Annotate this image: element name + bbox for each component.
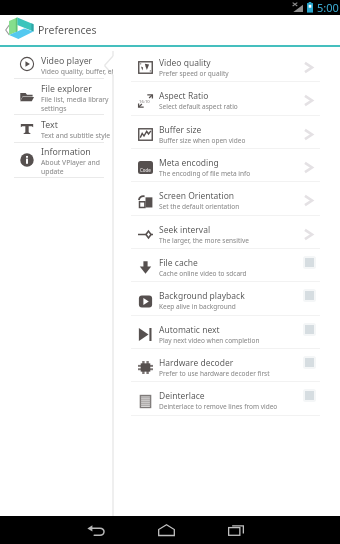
button[interactable]: Back <box>61 516 131 544</box>
staticText: Select default aspect ratio <box>159 102 238 111</box>
staticText: Information <box>41 146 91 158</box>
staticText: Automatic next <box>159 324 220 336</box>
button[interactable]: Recent apps <box>201 516 271 544</box>
staticText: Meta encoding <box>159 157 219 169</box>
button[interactable]: Hardware decoder <box>303 356 316 369</box>
staticText: The encoding of file meta info <box>159 169 251 178</box>
button[interactable]: Text <box>0 115 113 142</box>
staticText: File explorer <box>41 83 92 95</box>
staticText: Deinterlace to remove lines from video <box>159 402 278 411</box>
button[interactable]: Home <box>131 516 201 544</box>
staticText: Code <box>140 167 151 173</box>
staticText: Deinterlace <box>159 390 205 402</box>
staticText: Hardware decoder <box>159 357 234 369</box>
button[interactable]: Background playback <box>303 289 316 302</box>
staticText: 16:10 <box>139 99 150 105</box>
button[interactable]: Video quality <box>131 49 340 81</box>
button[interactable]: Screen Orientation <box>131 182 340 215</box>
staticText: Preferences <box>38 23 97 37</box>
button[interactable]: Deinterlace <box>303 389 316 402</box>
staticText: Video quality, buffer, etc <box>41 67 113 76</box>
staticText: File list, media library settings <box>41 95 109 113</box>
button[interactable]: Automatic next <box>131 316 340 348</box>
button[interactable]: File explorer <box>0 79 113 114</box>
button[interactable]: Video player <box>0 50 113 78</box>
staticText: Prefer to use hardware decoder first <box>159 369 270 378</box>
staticText: Background playback <box>159 290 245 302</box>
staticText: Cache online video to sdcard <box>159 269 247 278</box>
staticText: File cache <box>159 257 198 269</box>
staticText: About VPlayer and update <box>41 158 100 176</box>
staticText: Screen Orientation <box>159 190 235 202</box>
staticText: Buffer size <box>159 124 202 136</box>
button[interactable]: Seek interval <box>131 216 340 248</box>
button[interactable]: Code <box>131 149 340 181</box>
button[interactable]: File cache <box>303 256 316 269</box>
staticText: Seek interval <box>159 224 211 236</box>
staticText: Text <box>41 119 58 131</box>
button[interactable]: File cache <box>131 249 340 281</box>
staticText: Video player <box>41 55 93 67</box>
button[interactable]: Buffer size <box>131 116 340 148</box>
staticText: Prefer speed or quality <box>159 69 229 78</box>
button[interactable]: Information <box>0 143 113 177</box>
button[interactable]: Background playback <box>131 282 340 315</box>
staticText: Video quality <box>159 57 211 69</box>
button[interactable]: Deinterlace <box>131 382 340 415</box>
button[interactable]: Automatic next <box>303 323 316 336</box>
staticText: Text and subtitle style <box>41 131 111 140</box>
staticText: Play next video when completion <box>159 336 260 345</box>
staticText: 5:00 <box>317 0 339 15</box>
staticText: Keep alive in background <box>159 302 236 311</box>
button[interactable]: Navigate up <box>0 15 14 45</box>
staticText: Aspect Ratio <box>159 90 209 102</box>
staticText: The larger, the more sensitive <box>159 236 249 245</box>
button[interactable]: Hardware decoder <box>131 349 340 381</box>
staticText: Set the default orientation <box>159 202 240 211</box>
button[interactable]: 16:10 <box>131 82 340 115</box>
staticText: Buffer size when open video <box>159 136 246 145</box>
